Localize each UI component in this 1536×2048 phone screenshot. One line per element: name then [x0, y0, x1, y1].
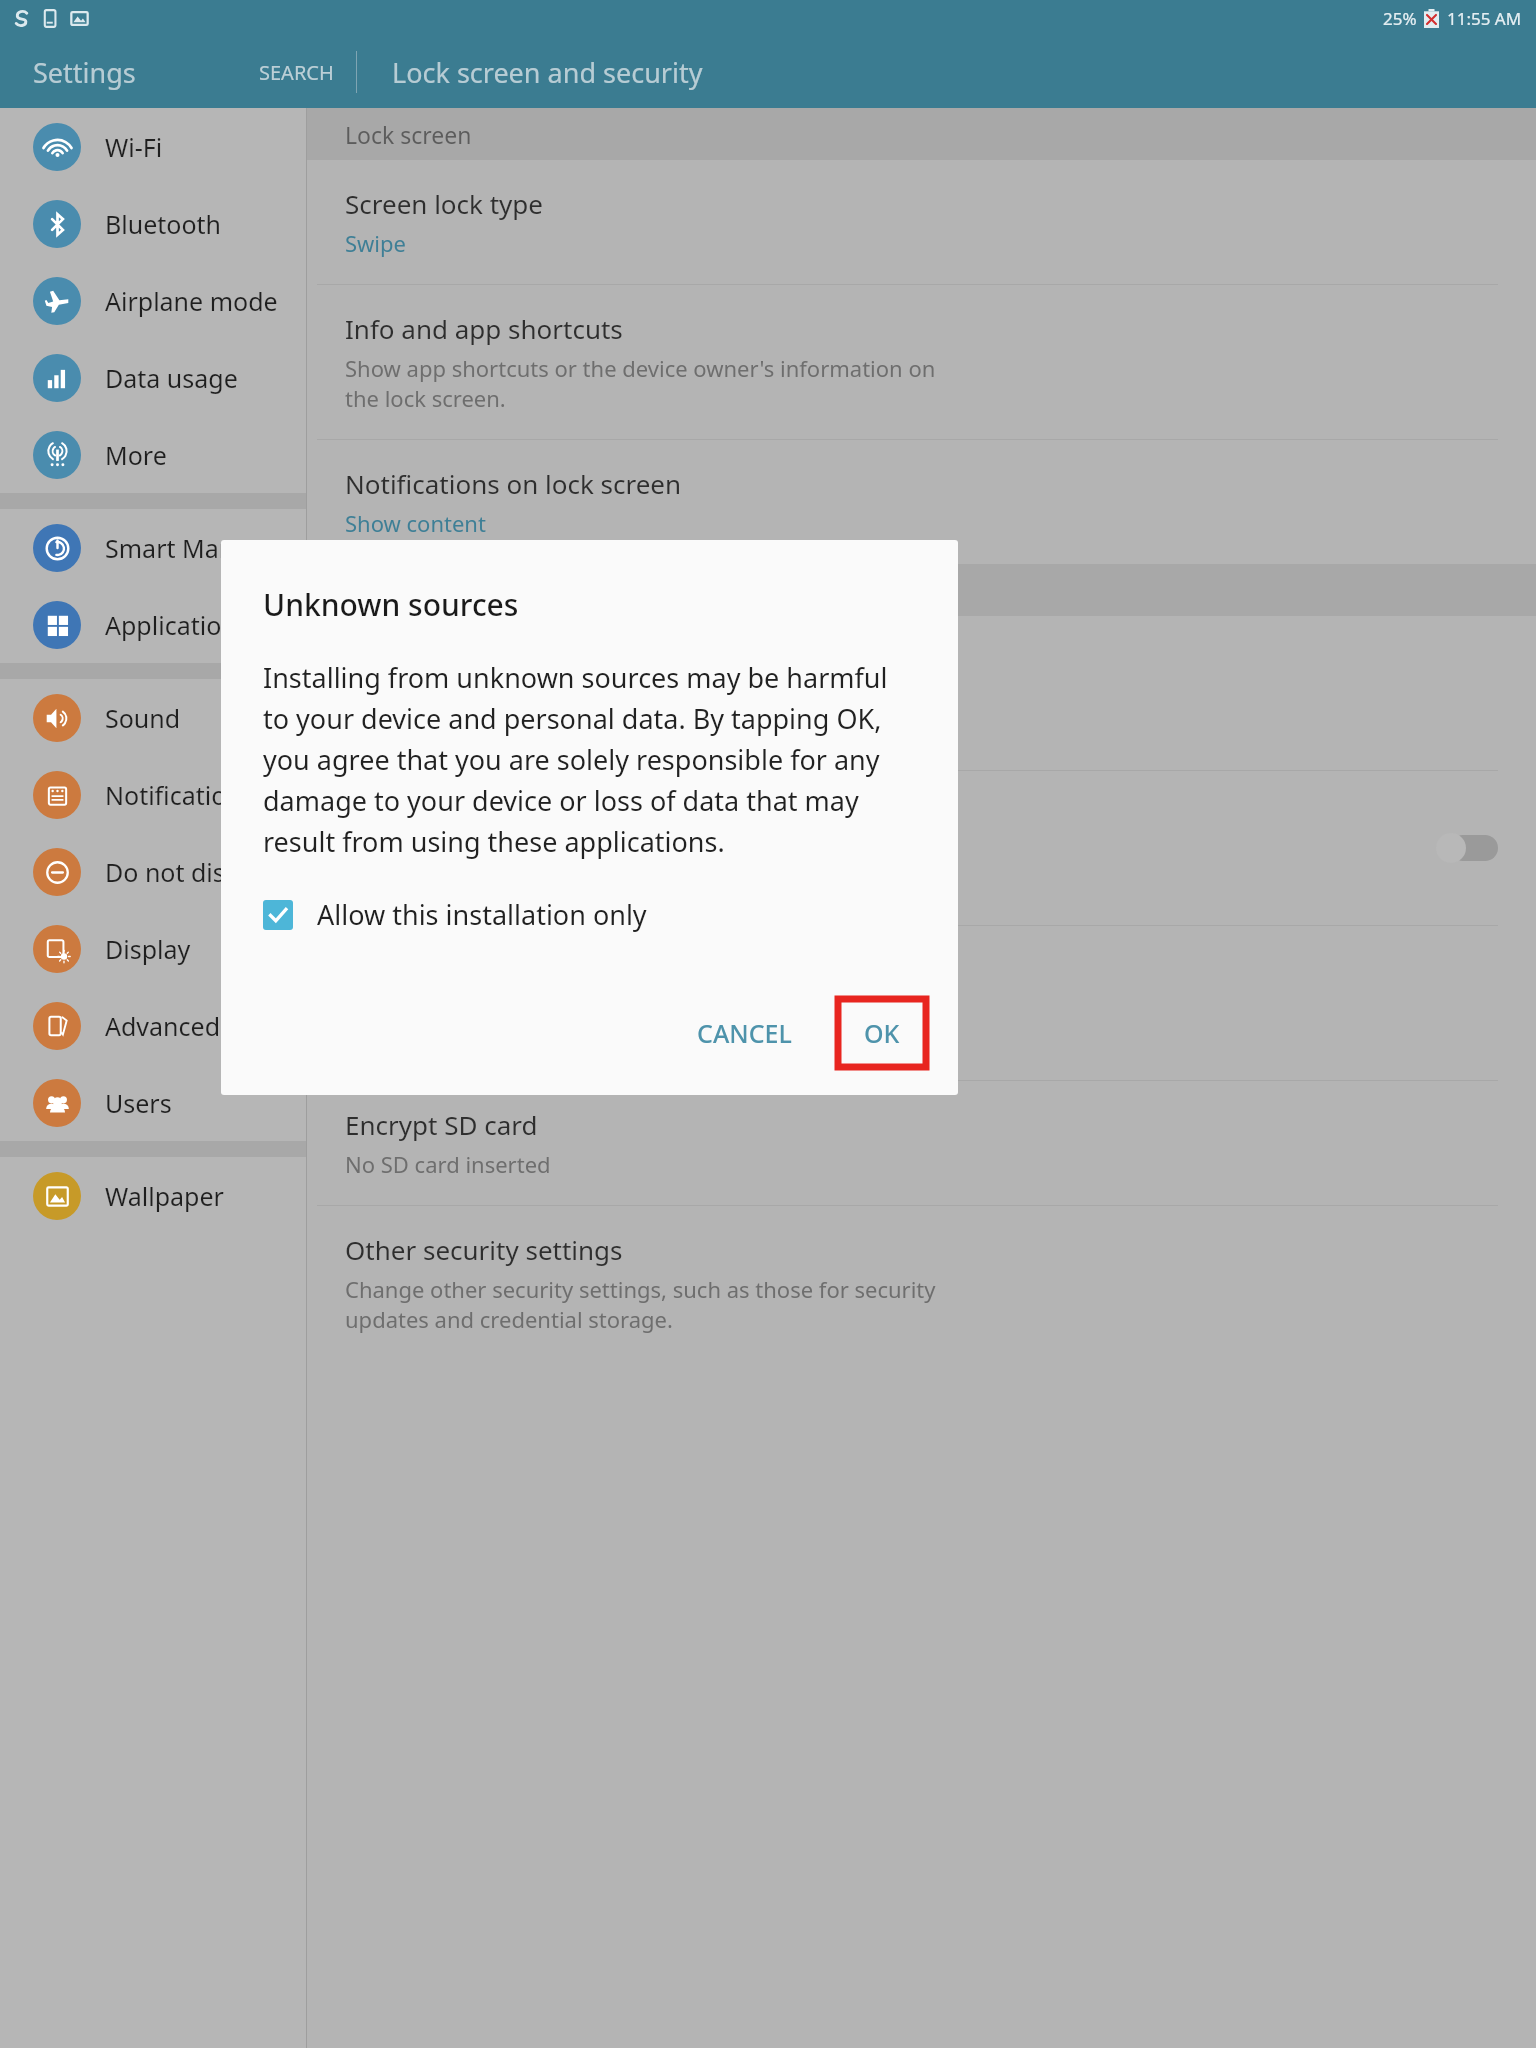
- button[interactable]: Display: [0, 910, 306, 987]
- staticText: Allow this installation only: [317, 896, 647, 933]
- staticText: Show content: [345, 508, 486, 538]
- staticText: Screen lock type: [345, 186, 543, 221]
- button[interactable]: Other security settings: [307, 1206, 1536, 1360]
- button[interactable]: Smart Manager: [0, 509, 306, 586]
- staticText: Installing from unknown sources may be h…: [263, 659, 916, 860]
- button[interactable]: Do not disturb: [0, 833, 306, 910]
- staticText: Protect your device by using a screen lo…: [345, 994, 891, 1054]
- button[interactable]: Info and app shortcuts: [307, 285, 1536, 439]
- staticText: Display: [105, 932, 191, 966]
- staticText: Users: [105, 1086, 172, 1120]
- button[interactable]: Airplane mode: [0, 262, 306, 339]
- staticText: Smart Manager: [105, 531, 288, 565]
- button[interactable]: Unknown sources toggle: [1436, 833, 1498, 863]
- staticText: Advanced features: [105, 1009, 306, 1043]
- staticText: Lock screen: [345, 119, 472, 150]
- button[interactable]: Users: [0, 1064, 306, 1141]
- staticText: Data usage: [105, 361, 238, 395]
- staticText: Encrypt SD card: [345, 1107, 538, 1142]
- staticText: Show app shortcuts or the device owner's…: [345, 353, 936, 413]
- staticText: 11:55 AM: [1447, 7, 1522, 30]
- staticText: Notifications: [105, 778, 254, 812]
- button[interactable]: SEARCH: [259, 59, 334, 86]
- staticText: OK: [864, 1016, 900, 1050]
- staticText: Change other security settings, such as …: [345, 1274, 936, 1334]
- button[interactable]: Wi-Fi: [0, 108, 306, 185]
- button[interactable]: Settings: [33, 54, 136, 91]
- staticText: Allow apps from sources other than the P…: [345, 839, 713, 899]
- staticText: Applications: [105, 608, 249, 642]
- staticText: Wallpaper: [105, 1179, 224, 1213]
- staticText: Info and app shortcuts: [345, 311, 623, 346]
- staticText: More connections: [105, 438, 306, 472]
- staticText: Unknown sources: [345, 797, 563, 832]
- button[interactable]: Advanced features: [0, 987, 306, 1064]
- button[interactable]: Screen lock type: [307, 160, 1536, 284]
- button[interactable]: Notifications: [0, 756, 306, 833]
- staticText: Bluetooth: [105, 207, 222, 241]
- button[interactable]: Sound: [0, 679, 306, 756]
- button[interactable]: Wallpaper: [0, 1157, 306, 1234]
- button[interactable]: Allow this installation only: [221, 892, 689, 937]
- staticText: Airplane mode: [105, 284, 278, 318]
- staticText: CANCEL: [697, 1016, 792, 1050]
- staticText: Sound: [105, 701, 181, 735]
- button[interactable]: Data usage: [0, 339, 306, 416]
- staticText: Unknown sources: [263, 584, 519, 625]
- staticText: Do not disturb: [105, 855, 275, 889]
- staticText: Secure your device by using your fingerp…: [345, 684, 685, 744]
- staticText: 25%: [1383, 7, 1417, 30]
- staticText: Wi-Fi: [105, 130, 163, 164]
- button[interactable]: Notifications on lock screen: [307, 440, 1536, 564]
- staticText: Other security settings: [345, 1232, 623, 1267]
- button[interactable]: More connections: [0, 416, 306, 493]
- button[interactable]: Unknown sources: [307, 771, 1536, 925]
- staticText: No SD card inserted: [345, 1149, 551, 1179]
- staticText: Fingerprints: [345, 642, 495, 677]
- button[interactable]: Fingerprints: [307, 616, 1536, 770]
- button[interactable]: CANCEL: [679, 1002, 810, 1064]
- button[interactable]: OK: [836, 997, 928, 1069]
- staticText: Lock screen and security: [392, 54, 703, 91]
- staticText: Swipe: [345, 228, 406, 258]
- button[interactable]: Secure startup: [307, 926, 1536, 1080]
- button[interactable]: Bluetooth: [0, 185, 306, 262]
- button[interactable]: Applications: [0, 586, 306, 663]
- staticText: Notifications on lock screen: [345, 466, 682, 501]
- button[interactable]: Encrypt SD card: [307, 1081, 1536, 1205]
